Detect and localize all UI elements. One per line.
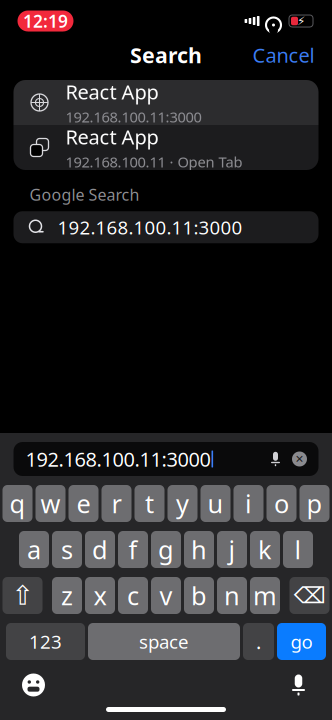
staticText: b	[191, 579, 207, 612]
staticText: k	[258, 533, 272, 566]
staticText: f	[128, 533, 137, 566]
button[interactable]: React App	[13, 125, 318, 170]
staticText: 192.168.100.11 · Open Tab	[65, 152, 242, 171]
staticText: s	[61, 533, 73, 566]
staticText: ⚡︎	[297, 14, 305, 28]
button[interactable]: i	[233, 485, 263, 522]
staticText: e	[76, 487, 90, 520]
button[interactable]: x	[85, 577, 115, 614]
staticText: ⌫	[293, 583, 325, 608]
staticText: 192.168.100.11:3000	[65, 107, 201, 126]
staticText: t	[145, 487, 154, 520]
staticText: .	[256, 628, 261, 655]
button[interactable]: o	[266, 485, 296, 522]
staticText: q	[9, 487, 25, 520]
staticText: ✕	[295, 453, 304, 465]
button[interactable]: p	[299, 485, 329, 522]
button[interactable]: m	[250, 577, 280, 614]
staticText: i	[245, 487, 252, 520]
button[interactable]: Shift	[2, 577, 42, 614]
button[interactable]: space	[88, 623, 240, 660]
button[interactable]: 192.168.100.11:3000	[13, 211, 318, 243]
button[interactable]: Cancel	[246, 36, 320, 74]
staticText: Google Search	[29, 184, 139, 205]
button[interactable]: go	[277, 623, 326, 660]
button[interactable]: 123	[6, 623, 85, 660]
staticText: w	[40, 487, 60, 520]
button[interactable]: w	[35, 485, 65, 522]
button[interactable]: t	[134, 485, 164, 522]
staticText: o	[274, 487, 289, 520]
button[interactable]: s	[52, 531, 82, 568]
button[interactable]: Dictation	[281, 668, 315, 702]
staticText: r	[111, 487, 121, 520]
button[interactable]: .	[243, 623, 274, 660]
staticText: x	[93, 579, 106, 612]
staticText: 192.168.100.11:3000	[25, 446, 210, 472]
button[interactable]: Delete	[289, 577, 329, 614]
button[interactable]: b	[184, 577, 214, 614]
staticText: space	[139, 629, 189, 654]
staticText: React App	[65, 123, 158, 150]
button[interactable]: e	[68, 485, 98, 522]
staticText: y	[176, 487, 189, 520]
staticText: c	[127, 579, 139, 612]
staticText: 12:19	[23, 9, 68, 32]
button[interactable]: q	[2, 485, 32, 522]
staticText: 123	[29, 629, 62, 654]
staticText: Cancel	[252, 42, 314, 68]
staticText: m	[253, 579, 277, 612]
staticText: React App	[65, 78, 158, 105]
staticText: h	[191, 533, 207, 566]
button[interactable]: v	[151, 577, 181, 614]
staticText: p	[306, 487, 322, 520]
button[interactable]: g	[151, 531, 181, 568]
button[interactable]: d	[85, 531, 115, 568]
button[interactable]: Dictate	[264, 448, 286, 470]
button[interactable]: f	[118, 531, 148, 568]
staticText: z	[61, 579, 73, 612]
button[interactable]: k	[250, 531, 280, 568]
button[interactable]: l	[283, 531, 313, 568]
staticText: Search	[130, 41, 202, 69]
button[interactable]: r	[101, 485, 131, 522]
staticText: g	[158, 533, 174, 566]
button[interactable]: y	[167, 485, 197, 522]
button[interactable]: n	[217, 577, 247, 614]
staticText: n	[224, 579, 240, 612]
staticText: ⇧	[11, 580, 33, 611]
staticText: 192.168.100.11:3000	[57, 215, 242, 240]
staticText: d	[92, 533, 108, 566]
staticText: a	[27, 533, 41, 566]
staticText: j	[228, 533, 235, 566]
staticText: u	[207, 487, 223, 520]
button[interactable]: React App	[13, 80, 318, 125]
staticText: v	[159, 579, 172, 612]
button[interactable]: h	[184, 531, 214, 568]
button[interactable]: a	[19, 531, 49, 568]
button[interactable]: u	[200, 485, 230, 522]
button[interactable]: c	[118, 577, 148, 614]
staticText: go	[290, 629, 312, 654]
button[interactable]: j	[217, 531, 247, 568]
button[interactable]: Clear text	[286, 446, 312, 472]
button[interactable]: z	[52, 577, 82, 614]
staticText: l	[294, 533, 301, 566]
button[interactable]: Emoji keyboard	[16, 668, 50, 702]
